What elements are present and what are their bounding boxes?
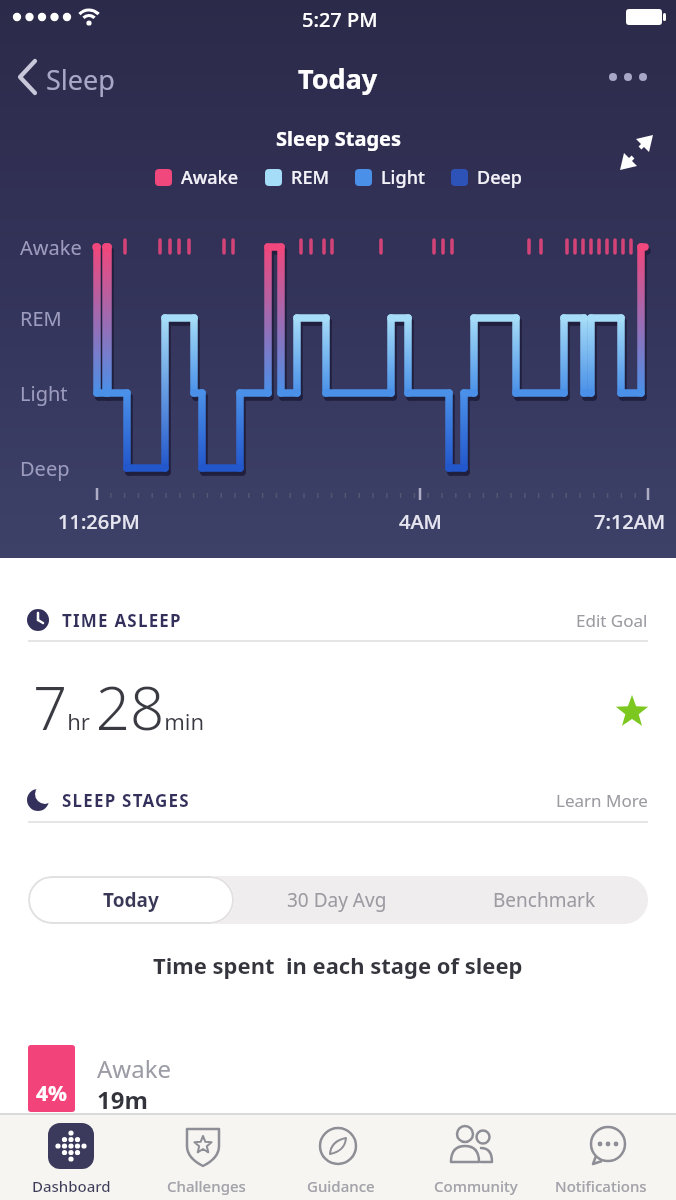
staticText: 5:27 PM [302,6,378,33]
button[interactable] [408,1115,538,1200]
button[interactable] [590,50,670,105]
button[interactable] [138,1115,268,1200]
button[interactable] [0,50,150,105]
staticText: Benchmark [493,887,596,913]
staticText: Community [434,1176,518,1196]
staticText: Learn More [556,789,648,812]
staticText: Edit Goal [576,609,648,632]
staticText: Sleep [46,61,115,98]
button[interactable] [610,132,660,182]
staticText: Dashboard [32,1176,111,1196]
staticText: Awake [20,234,82,261]
staticText: Light [20,380,68,407]
button[interactable]: Benchmark [440,876,648,924]
staticText: Challenges [167,1176,246,1196]
staticText: Notifications [555,1176,647,1196]
button[interactable]: Edit Goal [488,600,648,640]
button[interactable] [273,1115,403,1200]
button[interactable] [543,1115,673,1200]
staticText: Today [298,60,378,97]
staticText: REM [20,305,62,332]
staticText: Awake [181,165,239,190]
staticText: 19m [97,1083,148,1116]
staticText: Light [381,165,425,190]
staticText: 30 Day Avg [287,887,387,913]
button[interactable] [3,1115,133,1200]
staticText: 7hr 28min [33,666,205,748]
staticText: Sleep Stages [276,125,401,152]
staticText: Guidance [307,1176,375,1196]
staticText: 7:12AM [594,508,666,535]
staticText: Today [103,887,159,913]
staticText: Deep [477,165,522,190]
staticText: SLEEP STAGES [62,789,190,812]
button[interactable]: 30 Day Avg [234,876,440,924]
staticText: 4% [36,1079,67,1108]
button[interactable]: Today [28,876,234,924]
staticText: Deep [20,455,70,482]
staticText: 11:26PM [58,508,140,535]
staticText: Time spent in each stage of sleep [153,950,523,980]
staticText: REM [291,165,329,190]
staticText: Awake [97,1052,172,1085]
button[interactable]: Learn More [488,780,648,820]
staticText: 4AM [399,508,442,535]
staticText: TIME ASLEEP [62,609,182,632]
